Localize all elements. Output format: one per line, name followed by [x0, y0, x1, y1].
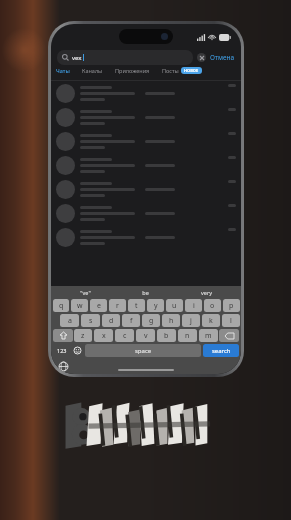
button[interactable]: z — [74, 329, 92, 342]
button[interactable]: k — [202, 314, 220, 327]
button[interactable]: c — [115, 329, 134, 342]
button[interactable] — [51, 153, 241, 177]
staticText: l — [230, 316, 232, 326]
button[interactable] — [51, 177, 241, 201]
staticText: very — [201, 289, 212, 296]
button[interactable]: v — [136, 329, 155, 342]
staticText: Приложения — [115, 67, 150, 74]
button[interactable]: "ve" — [55, 289, 115, 296]
button[interactable]: Отмена — [210, 53, 235, 62]
staticText: Отмена — [210, 53, 235, 62]
button[interactable] — [51, 129, 241, 153]
staticText: v — [144, 331, 148, 341]
staticText: search — [212, 347, 231, 355]
button[interactable]: t — [128, 299, 145, 312]
staticText: p — [229, 301, 234, 311]
staticText: h — [169, 316, 174, 326]
staticText: m — [205, 331, 212, 341]
staticText: w — [77, 301, 83, 311]
button[interactable]: Shift — [53, 329, 73, 342]
button[interactable]: Emoji — [70, 344, 84, 357]
staticText: z — [81, 331, 85, 341]
staticText: be — [142, 289, 149, 296]
button[interactable]: i — [185, 299, 202, 312]
button[interactable]: j — [182, 314, 200, 327]
button[interactable]: u — [166, 299, 183, 312]
staticText: x — [102, 331, 106, 341]
button[interactable]: b — [157, 329, 176, 342]
staticText: b — [164, 331, 169, 341]
staticText: "ve" — [80, 289, 91, 296]
staticText: f — [130, 316, 133, 326]
button[interactable]: p — [223, 299, 240, 312]
staticText: s — [89, 316, 93, 326]
staticText: y — [154, 301, 158, 311]
staticText: a — [68, 316, 72, 326]
staticText: Чаты — [56, 67, 70, 74]
staticText: j — [190, 316, 192, 326]
button[interactable]: vex — [57, 50, 193, 65]
staticText: q — [59, 301, 64, 311]
button[interactable]: search — [203, 344, 239, 357]
button[interactable]: o — [204, 299, 221, 312]
button[interactable]: f — [122, 314, 140, 327]
button[interactable]: s — [81, 314, 100, 327]
staticText: 123 — [57, 347, 67, 354]
staticText: Посты — [162, 67, 179, 74]
button[interactable]: 123 — [53, 344, 70, 357]
button[interactable]: d — [102, 314, 120, 327]
staticText: u — [172, 301, 177, 311]
button[interactable]: be — [115, 289, 176, 296]
button[interactable]: a — [60, 314, 79, 327]
button[interactable]: e — [90, 299, 107, 312]
button[interactable]: Backspace — [219, 329, 239, 342]
button[interactable]: w — [71, 299, 88, 312]
button[interactable]: l — [222, 314, 240, 327]
button[interactable]: r — [109, 299, 126, 312]
staticText: НОВОЕ — [184, 68, 199, 73]
button[interactable]: Чаты — [56, 67, 70, 74]
staticText: vex — [72, 54, 82, 62]
staticText: c — [123, 331, 127, 341]
button[interactable]: very — [176, 289, 237, 296]
button[interactable]: y — [147, 299, 164, 312]
button[interactable]: Приложения — [115, 67, 150, 74]
staticText: t — [135, 301, 138, 311]
button[interactable]: Change keyboard — [58, 361, 68, 371]
staticText: d — [109, 316, 114, 326]
button[interactable]: Посты — [162, 67, 179, 74]
button[interactable]: h — [162, 314, 180, 327]
button[interactable]: m — [199, 329, 218, 342]
staticText: k — [209, 316, 213, 326]
button[interactable]: x — [94, 329, 113, 342]
button[interactable] — [51, 105, 241, 129]
staticText: r — [116, 301, 119, 311]
staticText: i — [193, 301, 195, 311]
staticText: n — [185, 331, 190, 341]
button[interactable]: Clear — [197, 53, 206, 62]
button[interactable]: q — [53, 299, 69, 312]
staticText: o — [210, 301, 215, 311]
button[interactable] — [51, 81, 241, 105]
staticText: g — [149, 316, 154, 326]
button[interactable] — [51, 201, 241, 225]
staticText: space — [135, 347, 152, 355]
button[interactable]: g — [142, 314, 160, 327]
button[interactable]: space — [85, 344, 201, 357]
button[interactable] — [51, 225, 241, 249]
staticText: e — [97, 301, 101, 311]
button[interactable]: Каналы — [82, 67, 103, 74]
staticText: Каналы — [82, 67, 103, 74]
button[interactable]: n — [178, 329, 197, 342]
